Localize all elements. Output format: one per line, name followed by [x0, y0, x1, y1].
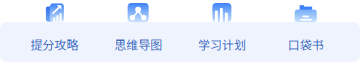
button[interactable]: 思维导图 [96, 0, 180, 62]
button[interactable]: 提分攻略 [12, 0, 96, 62]
staticText: 提分攻略 [30, 35, 78, 53]
staticText: 口袋书 [288, 35, 324, 53]
button[interactable]: 学习计划 [180, 0, 264, 62]
staticText: 思维导图 [114, 35, 162, 53]
staticText: 学习计划 [198, 35, 246, 53]
button[interactable]: 口袋书 [264, 0, 348, 62]
